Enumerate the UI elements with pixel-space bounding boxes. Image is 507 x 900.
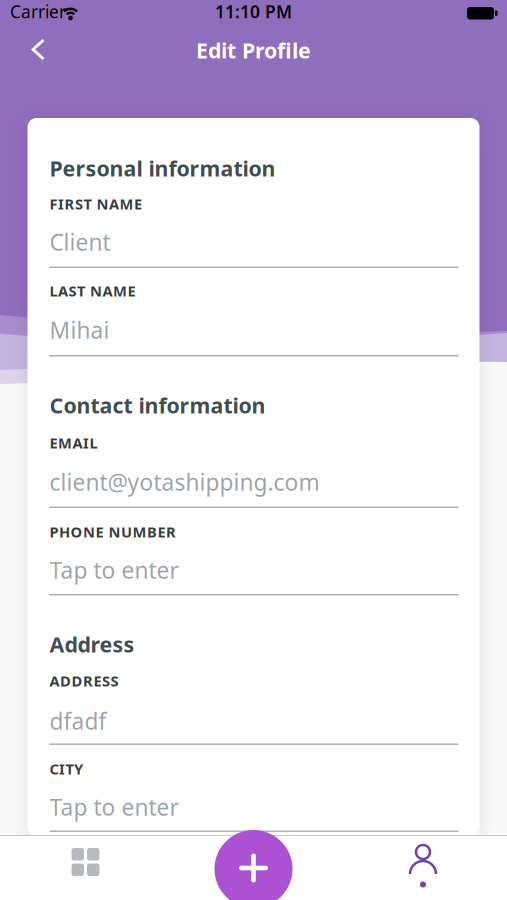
staticText: PHONE NUMBER xyxy=(49,522,176,541)
staticText: Tap to enter xyxy=(49,555,178,585)
button[interactable]: Client xyxy=(49,227,458,268)
staticText: LAST NAME xyxy=(49,281,135,300)
staticText: Contact information xyxy=(49,391,265,419)
button[interactable]: Profile xyxy=(408,845,438,889)
button[interactable]: Tap to enter xyxy=(49,792,458,832)
staticText: Mihai xyxy=(49,315,109,345)
button[interactable]: dfadf xyxy=(49,706,458,745)
button[interactable]: Add xyxy=(214,830,292,900)
button[interactable]: client@yotashipping.com xyxy=(49,467,458,508)
button[interactable]: Back xyxy=(30,38,47,61)
staticText: client@yotashipping.com xyxy=(49,467,319,497)
staticText: ADDRESS xyxy=(49,671,118,690)
staticText: Edit Profile xyxy=(196,36,311,64)
staticText: 11:10 PM xyxy=(215,0,292,23)
button[interactable]: Mihai xyxy=(49,315,458,356)
staticText: Personal information xyxy=(49,154,275,182)
staticText: Tap to enter xyxy=(49,792,178,822)
button[interactable]: Dashboard xyxy=(71,848,99,876)
button[interactable]: Tap to enter xyxy=(49,555,458,595)
staticText: dfadf xyxy=(49,706,106,736)
staticText: FIRST NAME xyxy=(49,194,142,213)
staticText: Carrier xyxy=(10,0,66,23)
staticText: EMAIL xyxy=(49,433,97,452)
staticText: Address xyxy=(49,630,134,658)
staticText: CITY xyxy=(49,759,83,778)
staticText: Client xyxy=(49,227,110,257)
